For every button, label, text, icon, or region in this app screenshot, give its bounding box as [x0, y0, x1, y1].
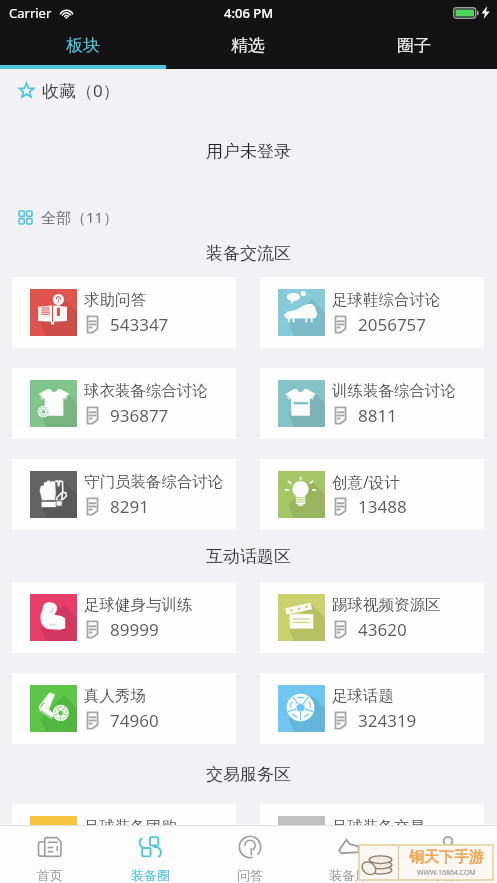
staticText: 8291: [110, 495, 149, 518]
button[interactable]: 真人秀场: [12, 673, 236, 744]
staticText: 用户未登录: [206, 141, 291, 162]
staticText: 球衣装备综合讨论: [84, 381, 208, 401]
staticText: 交易服务区: [206, 764, 291, 785]
staticText: 我的: [435, 867, 461, 883]
staticText: 收藏（0）: [42, 79, 120, 102]
button[interactable]: 问答: [200, 826, 299, 883]
button[interactable]: 足球装备交易: [260, 804, 484, 875]
staticText: 守门员装备综合讨论: [84, 472, 224, 492]
staticText: 89999: [110, 618, 159, 641]
button[interactable]: 球衣装备综合讨论: [12, 368, 236, 439]
button[interactable]: 收藏（0）: [0, 69, 497, 112]
button[interactable]: 装备圈: [100, 826, 200, 883]
button[interactable]: 板块: [0, 25, 165, 65]
button[interactable]: 训练装备综合讨论: [260, 368, 484, 439]
staticText: 铜天下手游: [409, 848, 484, 867]
button[interactable]: 全部（11）: [0, 205, 497, 229]
staticText: 足球话题: [332, 686, 394, 706]
staticText: 足球健身与训练: [84, 595, 193, 615]
button[interactable]: 创意/设计: [260, 459, 484, 530]
staticText: 问答: [237, 867, 263, 883]
staticText: 324319: [358, 709, 417, 732]
staticText: 4:06 PM: [224, 4, 274, 22]
staticText: 543347: [110, 313, 169, 336]
staticText: 踢球视频资源区: [332, 595, 441, 615]
button[interactable]: 足球话题: [260, 673, 484, 744]
staticText: 求助问答: [84, 290, 146, 310]
staticText: 2056757: [358, 313, 427, 336]
staticText: 板块: [66, 35, 100, 56]
staticText: 精选: [231, 35, 265, 56]
button[interactable]: 首页: [0, 826, 100, 883]
staticText: 互动话题区: [206, 546, 291, 567]
staticText: 装备库: [329, 867, 368, 883]
staticText: 13488: [358, 495, 407, 518]
staticText: 首页: [37, 867, 63, 883]
button[interactable]: 踢球视频资源区: [260, 582, 484, 653]
staticText: 真人秀场: [84, 686, 146, 706]
button[interactable]: 我的: [398, 826, 497, 883]
staticText: 装备圈: [131, 867, 170, 883]
staticText: 全部（11）: [41, 207, 119, 227]
staticText: 创意/设计: [332, 471, 400, 492]
button[interactable]: 守门员装备综合讨论: [12, 459, 236, 530]
button[interactable]: 足球健身与训练: [12, 582, 236, 653]
staticText: 8811: [358, 404, 397, 427]
button[interactable]: 足球鞋综合讨论: [260, 277, 484, 348]
staticText: 足球鞋综合讨论: [332, 290, 441, 310]
staticText: 足球装备交易: [332, 817, 425, 837]
staticText: Carrier: [9, 4, 52, 22]
staticText: 装备交流区: [206, 243, 291, 264]
staticText: 圈子: [397, 35, 431, 56]
staticText: 43620: [358, 618, 407, 641]
staticText: 74960: [110, 709, 159, 732]
button[interactable]: 求助问答: [12, 277, 236, 348]
button[interactable]: 足球装备团购: [12, 804, 236, 875]
button[interactable]: 精选: [165, 25, 331, 65]
button[interactable]: 装备库: [299, 826, 398, 883]
staticText: 936877: [110, 404, 169, 427]
staticText: WWW.16864.COM: [417, 868, 476, 878]
staticText: 足球装备团购: [84, 817, 177, 837]
button[interactable]: 圈子: [331, 25, 497, 65]
staticText: 训练装备综合讨论: [332, 381, 456, 401]
